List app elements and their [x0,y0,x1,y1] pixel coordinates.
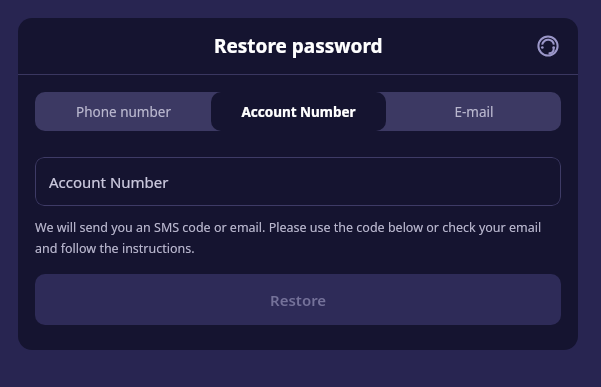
staticText: Restore [270,290,327,310]
staticText: Phone number [76,103,171,121]
staticText: Restore password [214,33,383,59]
button[interactable]: Account Number [35,157,561,206]
staticText: Account Number [241,103,356,121]
staticText: Account Number [49,172,169,192]
button[interactable]: Support [530,28,566,64]
staticText: E-mail [454,103,494,121]
button[interactable]: Restore [35,274,561,325]
button[interactable]: Phone number [35,92,211,131]
staticText: We will send you an SMS code or email. P… [35,219,561,256]
button[interactable]: E-mail [386,92,561,131]
button[interactable]: Account Number [211,92,386,131]
